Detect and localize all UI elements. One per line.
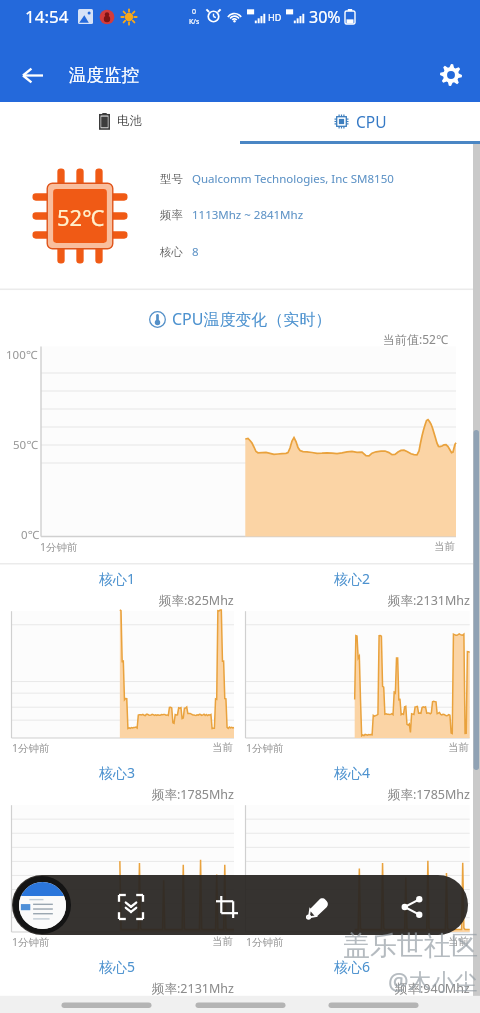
- button[interactable]: Screenshot preview: [13, 876, 71, 934]
- staticText: 温度监控: [69, 64, 139, 86]
- button[interactable]: Settings: [430, 54, 472, 96]
- staticText: 100℃: [6, 347, 38, 363]
- staticText: 1113Mhz ~ 2841Mhz: [192, 207, 304, 223]
- staticText: 核心5: [99, 957, 136, 976]
- staticText: 频率:2131Mhz: [388, 592, 470, 609]
- staticText: 当前值:52℃: [383, 331, 448, 347]
- staticText: 频率:1785Mhz: [152, 786, 234, 803]
- staticText: 当前: [434, 540, 455, 553]
- button[interactable]: CPU: [240, 102, 480, 144]
- button[interactable]: Crop: [206, 886, 248, 928]
- button[interactable]: Scroll capture: [110, 886, 152, 928]
- button[interactable]: Edit: [297, 886, 339, 928]
- button[interactable]: Share: [391, 886, 433, 928]
- staticText: 1分钟前: [12, 935, 50, 949]
- staticText: 当前: [448, 935, 469, 948]
- staticText: 1分钟前: [40, 540, 78, 554]
- staticText: 8: [192, 244, 199, 260]
- staticText: 1分钟前: [246, 935, 284, 949]
- staticText: CPU: [356, 111, 387, 132]
- staticText: 30%: [309, 6, 341, 28]
- staticText: 1分钟前: [12, 741, 50, 755]
- staticText: 50℃: [13, 437, 38, 453]
- button[interactable]: 电池: [0, 102, 240, 144]
- staticText: 核心6: [334, 957, 371, 976]
- staticText: 0℃: [21, 527, 40, 543]
- staticText: 频率:2131Mhz: [152, 980, 234, 997]
- staticText: Qualcomm Technologies, Inc SM8150: [192, 171, 394, 187]
- staticText: 当前: [212, 741, 233, 754]
- staticText: 当前: [448, 741, 469, 754]
- staticText: @木小尘: [388, 965, 478, 996]
- staticText: 核心2: [334, 569, 371, 588]
- staticText: 频率:940Mhz: [395, 980, 470, 997]
- staticText: 电池: [117, 113, 142, 129]
- staticText: 当前: [212, 935, 233, 948]
- staticText: CPU温度变化（实时）: [172, 308, 332, 330]
- staticText: K/s: [189, 17, 200, 27]
- staticText: HD: [268, 11, 282, 23]
- staticText: 频率: [160, 208, 183, 222]
- staticText: 盖乐世社区: [343, 929, 478, 963]
- staticText: 0: [192, 7, 197, 17]
- staticText: 型号: [160, 172, 183, 186]
- staticText: 14:54: [25, 5, 69, 28]
- staticText: 核心: [160, 245, 183, 259]
- staticText: 核心1: [99, 569, 136, 588]
- staticText: 频率:825Mhz: [159, 592, 234, 609]
- staticText: 52℃: [57, 202, 105, 232]
- staticText: 核心3: [99, 763, 136, 782]
- staticText: 1分钟前: [246, 741, 284, 755]
- staticText: 频率:1785Mhz: [388, 786, 470, 803]
- staticText: 核心4: [334, 763, 371, 782]
- button[interactable]: Back: [12, 55, 53, 96]
